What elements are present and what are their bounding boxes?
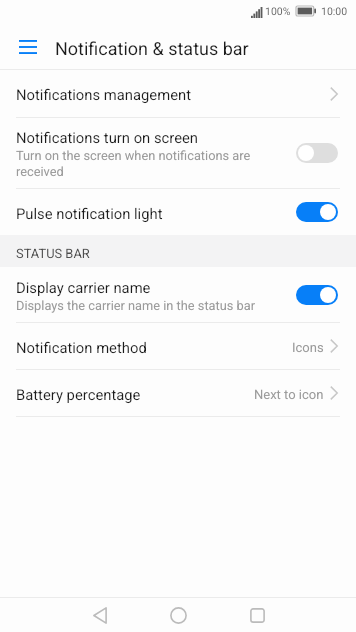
- button[interactable]: Notifications turn on screen: [0, 118, 356, 188]
- button[interactable]: Menu: [0, 22, 54, 69]
- staticText: Next to icon: [254, 387, 324, 402]
- button[interactable]: Toggle off: [296, 143, 338, 163]
- button[interactable]: Toggle on: [296, 285, 338, 305]
- staticText: Notifications management: [16, 86, 192, 103]
- staticText: Pulse notification light: [16, 205, 163, 222]
- staticText: Displays the carrier name in the status …: [16, 298, 256, 313]
- button[interactable]: Pulse notification light: [0, 189, 356, 235]
- button[interactable]: Recents: [218, 598, 297, 632]
- button[interactable]: Display carrier name: [0, 267, 356, 322]
- staticText: Turn on the screen when notifications ar…: [16, 148, 288, 179]
- staticText: Icons: [292, 340, 324, 355]
- staticText: 10:00: [321, 5, 348, 17]
- staticText: Display carrier name: [16, 279, 151, 296]
- button[interactable]: Back: [60, 598, 139, 632]
- button[interactable]: Notification method: [0, 323, 356, 369]
- button[interactable]: Battery percentage: [0, 370, 356, 416]
- staticText: Battery percentage: [16, 386, 141, 403]
- staticText: 100%: [265, 5, 291, 17]
- staticText: Notification & status bar: [55, 38, 249, 59]
- staticText: Notification method: [16, 339, 147, 356]
- button[interactable]: Home: [139, 598, 218, 632]
- button[interactable]: Notifications management: [0, 70, 356, 117]
- button[interactable]: Toggle on: [296, 202, 338, 222]
- staticText: Notifications turn on screen: [16, 129, 199, 146]
- staticText: STATUS BAR: [16, 246, 90, 261]
